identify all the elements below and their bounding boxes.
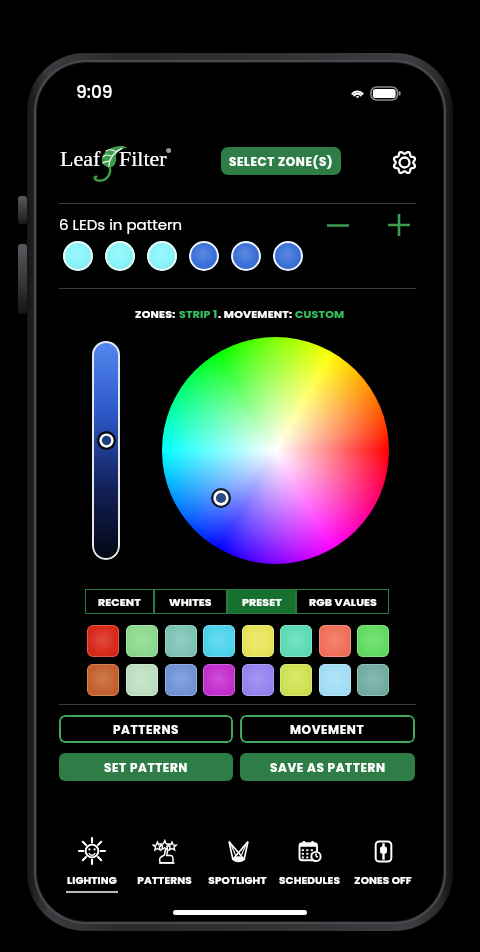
button[interactable]: MOVEMENT xyxy=(240,715,415,743)
button[interactable]: PRESET xyxy=(227,589,296,614)
button[interactable] xyxy=(63,241,93,271)
button[interactable] xyxy=(242,664,274,696)
button[interactable] xyxy=(319,625,351,657)
button[interactable] xyxy=(203,625,235,657)
button[interactable] xyxy=(165,625,197,657)
staticText: SPOTLIGHT xyxy=(208,873,267,888)
staticText: SAVE AS PATTERN xyxy=(270,759,386,776)
button[interactable] xyxy=(280,625,312,657)
button[interactable]: SAVE AS PATTERN xyxy=(240,753,415,781)
button[interactable]: ZONES OFF xyxy=(346,838,419,896)
staticText: CUSTOM xyxy=(295,306,345,321)
button[interactable]: SCHEDULES xyxy=(273,838,346,896)
button[interactable] xyxy=(87,664,119,696)
button[interactable] xyxy=(165,664,197,696)
button[interactable]: Brightness xyxy=(92,341,120,560)
staticText: LIGHTING xyxy=(67,873,117,888)
button[interactable]: Remove LED xyxy=(324,211,352,239)
button[interactable]: SET PATTERN xyxy=(59,753,233,781)
staticText: MOVEMENT xyxy=(290,721,365,738)
button[interactable] xyxy=(273,241,303,271)
button[interactable]: RGB VALUES xyxy=(296,589,389,614)
staticText: Filter xyxy=(119,146,167,170)
button[interactable] xyxy=(357,625,389,657)
button[interactable]: Add LED xyxy=(385,211,413,239)
staticText: SET PATTERN xyxy=(104,759,188,776)
staticText: PATTERNS xyxy=(137,873,192,888)
button[interactable]: RECENT xyxy=(85,589,154,614)
staticText: ZONES OFF xyxy=(354,873,412,888)
button[interactable]: Filter xyxy=(119,146,167,170)
button[interactable]: Color wheel xyxy=(162,337,389,564)
button[interactable]: WHITES xyxy=(154,589,227,614)
staticText: 9:09 xyxy=(76,80,113,104)
staticText: 6 LEDs in pattern xyxy=(59,214,183,235)
staticText: . MOVEMENT: xyxy=(218,306,295,321)
staticText: RECENT xyxy=(98,594,141,609)
staticText: WHITES xyxy=(169,594,212,609)
button[interactable]: PATTERNS xyxy=(128,838,201,896)
staticText: SELECT ZONE(S) xyxy=(229,153,334,170)
staticText: PRESET xyxy=(242,594,282,609)
button[interactable] xyxy=(126,664,158,696)
staticText: STRIP 1 xyxy=(179,306,218,321)
button[interactable] xyxy=(105,241,135,271)
button[interactable] xyxy=(126,625,158,657)
button[interactable] xyxy=(357,664,389,696)
button[interactable] xyxy=(203,664,235,696)
staticText: Leaf xyxy=(60,146,101,170)
button[interactable] xyxy=(231,241,261,271)
button[interactable]: SPOTLIGHT xyxy=(201,838,274,896)
button[interactable] xyxy=(189,241,219,271)
button[interactable]: Leaf xyxy=(60,146,101,170)
staticText: RGB VALUES xyxy=(309,594,377,609)
button[interactable]: PATTERNS xyxy=(59,715,233,743)
button[interactable] xyxy=(147,241,177,271)
staticText: PATTERNS xyxy=(113,721,180,738)
button[interactable]: SELECT ZONE(S) xyxy=(221,147,341,175)
button[interactable] xyxy=(242,625,274,657)
button[interactable] xyxy=(280,664,312,696)
staticText: ZONES: xyxy=(135,306,179,321)
button[interactable] xyxy=(319,664,351,696)
staticText: SCHEDULES xyxy=(279,873,340,888)
button[interactable]: LIGHTING xyxy=(55,838,128,896)
button[interactable] xyxy=(87,625,119,657)
button[interactable]: Settings xyxy=(389,147,419,177)
staticText: ® xyxy=(166,147,172,155)
